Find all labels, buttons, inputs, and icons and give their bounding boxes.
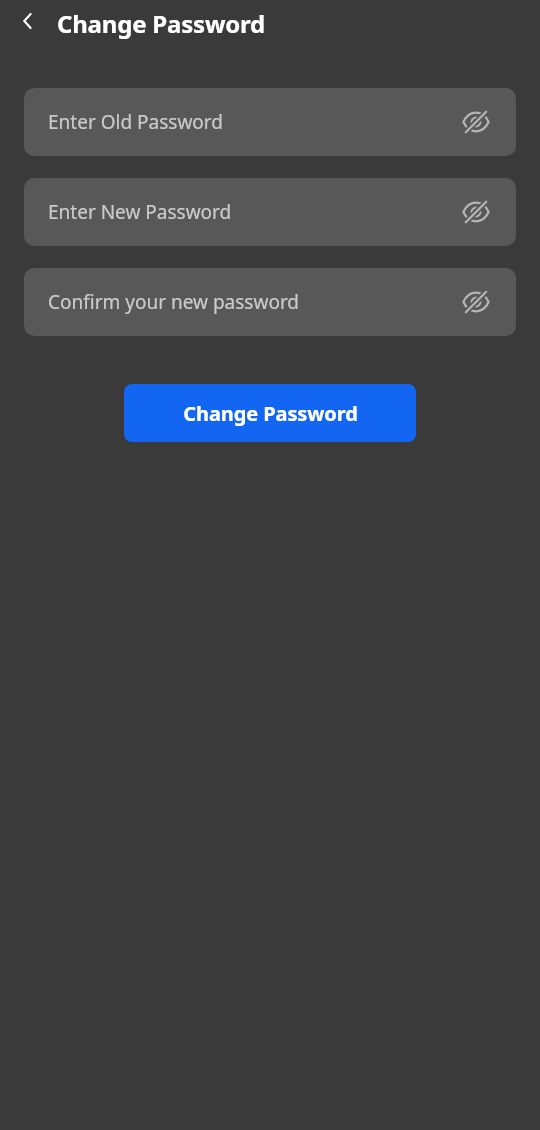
staticText: Enter Old Password	[48, 109, 223, 135]
button[interactable]: Toggle confirm password visibility	[454, 280, 498, 324]
button[interactable]: Enter Old Password	[24, 88, 516, 156]
staticText: Enter New Password	[48, 199, 232, 225]
button[interactable]: Enter New Password	[24, 178, 516, 246]
button[interactable]: Back	[10, 3, 46, 39]
button[interactable]: Change Password	[124, 384, 416, 442]
staticText: Change Password	[183, 400, 358, 427]
staticText: Confirm your new password	[48, 289, 300, 315]
button[interactable]: Toggle old password visibility	[454, 100, 498, 144]
button[interactable]: Confirm your new password	[24, 268, 516, 336]
button[interactable]: Toggle new password visibility	[454, 190, 498, 234]
staticText: Change Password	[57, 7, 266, 40]
